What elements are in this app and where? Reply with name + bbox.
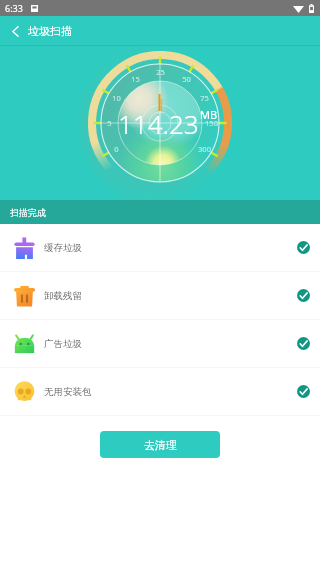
- button[interactable]: 去清理: [100, 431, 220, 458]
- staticText: 5: [107, 118, 112, 128]
- staticText: 卸载残留: [44, 290, 82, 302]
- button[interactable]: 卸载残留: [0, 272, 320, 319]
- staticText: 扫描完成: [10, 207, 46, 218]
- button[interactable]: 广告垃圾: [0, 320, 320, 367]
- staticText: 0: [114, 144, 119, 154]
- staticText: MB: [200, 107, 218, 122]
- staticText: 150: [205, 118, 218, 128]
- staticText: 75: [200, 93, 209, 103]
- staticText: 114.23: [118, 106, 199, 141]
- staticText: 50: [182, 74, 191, 84]
- staticText: 6:33: [5, 2, 23, 14]
- staticText: 缓存垃圾: [44, 242, 82, 254]
- button[interactable]: 缓存垃圾: [0, 224, 320, 271]
- staticText: 300: [198, 144, 211, 154]
- button[interactable]: Back: [0, 16, 30, 46]
- staticText: 15: [131, 74, 140, 84]
- staticText: 10: [112, 93, 121, 103]
- button[interactable]: 无用安装包: [0, 368, 320, 415]
- staticText: 垃圾扫描: [28, 24, 72, 38]
- staticText: 去清理: [144, 438, 177, 452]
- staticText: 广告垃圾: [44, 338, 82, 350]
- staticText: 25: [156, 67, 165, 77]
- staticText: 无用安装包: [44, 386, 92, 398]
